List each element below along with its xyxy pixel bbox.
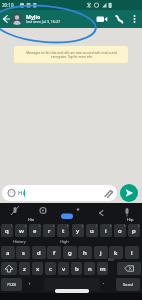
button[interactable]: h bbox=[78, 246, 92, 259]
staticText: High bbox=[60, 239, 69, 244]
staticText: 20:10 bbox=[2, 2, 14, 8]
button[interactable]: c bbox=[45, 262, 56, 275]
staticText: . bbox=[103, 278, 105, 285]
button[interactable]: r bbox=[43, 224, 55, 237]
button[interactable]: n bbox=[84, 262, 95, 275]
staticText: w bbox=[19, 227, 24, 235]
button[interactable]: s bbox=[16, 246, 30, 259]
staticText: d bbox=[37, 249, 41, 257]
button[interactable]: a bbox=[1, 246, 15, 259]
staticText: last seen Jul 3, 16:27 bbox=[26, 19, 61, 24]
staticText: k bbox=[114, 249, 118, 257]
staticText: n bbox=[88, 265, 92, 273]
button[interactable]: o bbox=[114, 224, 126, 237]
staticText: l bbox=[131, 249, 133, 257]
staticText: p bbox=[132, 227, 136, 235]
staticText: c bbox=[49, 265, 52, 273]
staticText: 1 bbox=[11, 224, 13, 228]
button[interactable]: y bbox=[72, 224, 84, 237]
staticText: m bbox=[100, 265, 106, 273]
button[interactable]: Messages to this chat and calls are now … bbox=[14, 46, 128, 63]
staticText: 3 bbox=[39, 224, 41, 228]
staticText: q bbox=[5, 227, 9, 235]
staticText: History bbox=[13, 239, 26, 244]
button[interactable]: u bbox=[86, 224, 98, 237]
button[interactable]: k bbox=[109, 246, 123, 259]
button[interactable]: e bbox=[29, 224, 41, 237]
button[interactable] bbox=[113, 13, 125, 25]
button[interactable] bbox=[95, 13, 109, 25]
button[interactable]: p bbox=[128, 224, 140, 237]
staticText: s bbox=[22, 249, 25, 257]
button[interactable]: m bbox=[97, 262, 108, 275]
staticText: j bbox=[100, 249, 102, 257]
staticText: MyJio bbox=[26, 13, 41, 20]
button[interactable]: Send bbox=[116, 278, 140, 291]
staticText: i bbox=[105, 227, 107, 235]
staticText: 2 bbox=[25, 224, 27, 228]
staticText: 4 bbox=[53, 224, 55, 228]
staticText: y bbox=[76, 227, 80, 235]
staticText: t bbox=[62, 227, 65, 235]
button[interactable]: ?123 bbox=[1, 278, 22, 291]
button[interactable]: g bbox=[63, 246, 77, 259]
staticText: o bbox=[118, 227, 122, 235]
button[interactable]: x bbox=[32, 262, 43, 275]
staticText: e bbox=[33, 227, 37, 235]
button[interactable] bbox=[117, 262, 141, 275]
staticText: x bbox=[36, 265, 40, 273]
staticText: f bbox=[53, 249, 56, 257]
button[interactable] bbox=[120, 184, 138, 202]
staticText: Messages to this chat and calls are now … bbox=[26, 51, 117, 55]
staticText: u bbox=[90, 227, 94, 235]
button[interactable] bbox=[130, 13, 139, 25]
button[interactable]: i bbox=[100, 224, 112, 237]
button[interactable] bbox=[11, 13, 23, 25]
button[interactable] bbox=[44, 278, 100, 291]
staticText: Hi bbox=[18, 189, 24, 197]
staticText: Him bbox=[108, 258, 115, 262]
staticText: b bbox=[75, 265, 79, 273]
staticText: v bbox=[62, 265, 66, 273]
button[interactable]: v bbox=[58, 262, 69, 275]
staticText: 5 bbox=[67, 224, 69, 228]
button[interactable]: q bbox=[1, 224, 13, 237]
staticText: a bbox=[6, 249, 10, 257]
button[interactable]: j bbox=[94, 246, 108, 259]
button[interactable]: f bbox=[47, 246, 61, 259]
staticText: g bbox=[68, 249, 72, 257]
staticText: z bbox=[23, 265, 26, 273]
button[interactable]: b bbox=[71, 262, 82, 275]
staticText: 6 bbox=[82, 224, 84, 228]
button[interactable] bbox=[1, 262, 17, 275]
staticText: ?123 bbox=[7, 282, 17, 288]
button[interactable]: t bbox=[57, 224, 69, 237]
button[interactable] bbox=[0, 10, 12, 28]
staticText: 9 bbox=[124, 224, 126, 228]
staticText: 8 bbox=[110, 224, 112, 228]
staticText: 0 bbox=[138, 224, 140, 228]
staticText: 7 bbox=[96, 224, 98, 228]
button[interactable]: l bbox=[125, 246, 139, 259]
button[interactable]: d bbox=[32, 246, 46, 259]
staticText: Hip bbox=[127, 217, 134, 222]
staticText: , bbox=[29, 278, 31, 285]
staticText: h bbox=[83, 249, 87, 257]
button[interactable]: w bbox=[15, 224, 27, 237]
staticText: Hie bbox=[28, 217, 35, 222]
staticText: Send bbox=[123, 282, 133, 288]
button[interactable]: Hi bbox=[2, 185, 117, 201]
staticText: encryption. Tap for more info. bbox=[51, 55, 93, 59]
staticText: r bbox=[48, 227, 51, 235]
button[interactable]: MyJio bbox=[25, 11, 95, 27]
button[interactable]: z bbox=[19, 262, 30, 275]
